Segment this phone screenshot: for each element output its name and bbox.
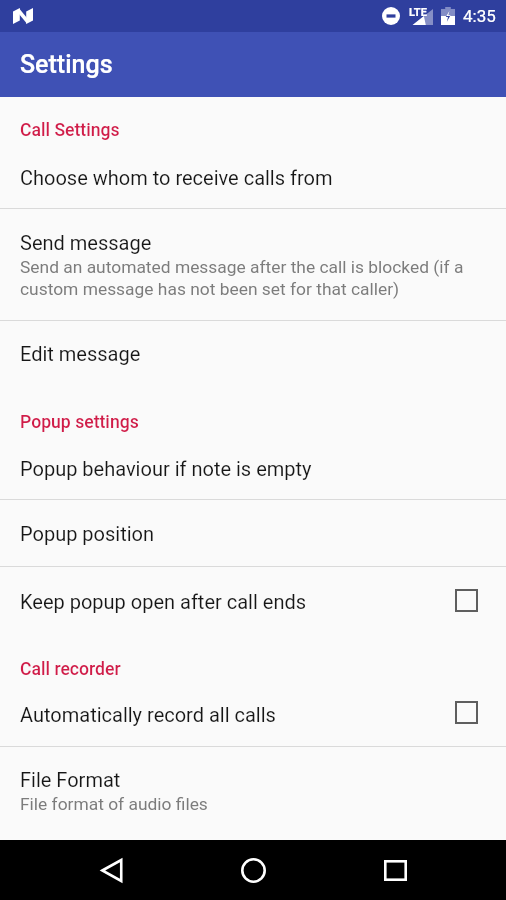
staticText: 4:35 [463, 6, 496, 26]
button[interactable]: Edit message [0, 321, 506, 390]
button[interactable]: Automatically record all calls [0, 690, 506, 746]
staticText: Choose whom to receive calls from [20, 166, 333, 189]
staticText: Send an automated message after the call… [20, 257, 490, 299]
staticText: Keep popup open after call ends [20, 590, 307, 613]
staticText: Popup behaviour if note is empty [20, 457, 312, 480]
staticText: LTE [409, 6, 427, 19]
staticText: Send message [20, 231, 152, 254]
button[interactable]: Keep popup open after call ends [0, 567, 506, 640]
staticText: Popup position [20, 522, 155, 545]
staticText: Settings [20, 50, 113, 79]
staticText: File format of audio files [20, 794, 208, 814]
button[interactable]: Send message [0, 209, 506, 320]
staticText: Call recorder [20, 659, 121, 680]
button[interactable]: Choose whom to receive calls from [0, 152, 506, 208]
button[interactable]: File Format [0, 747, 506, 840]
button[interactable]: Recents [365, 840, 425, 900]
button[interactable]: Home [223, 840, 283, 900]
staticText: Popup settings [20, 412, 139, 433]
button[interactable]: Popup behaviour if note is empty [0, 440, 506, 499]
staticText: Call Settings [20, 120, 120, 141]
button[interactable]: Popup position [0, 500, 506, 566]
staticText: Automatically record all calls [20, 703, 276, 726]
staticText: File Format [20, 768, 121, 791]
button[interactable]: Back [82, 840, 142, 900]
staticText: Edit message [20, 342, 141, 365]
